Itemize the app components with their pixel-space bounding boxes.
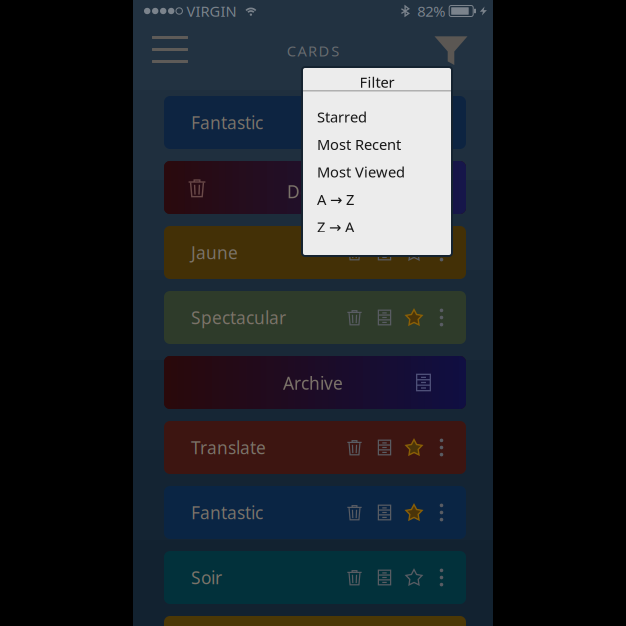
button[interactable]: Starred: [302, 103, 452, 130]
staticText: Jaune: [191, 241, 238, 264]
staticText: Soir: [191, 566, 222, 589]
staticText: Fantastic: [191, 111, 263, 134]
button[interactable]: Most Recent: [302, 130, 452, 158]
button[interactable]: Filter: [427, 30, 475, 69]
button[interactable]: Spectacular: [164, 291, 466, 344]
staticText: A → Z: [317, 189, 354, 209]
button[interactable]: Soir: [164, 551, 466, 604]
staticText: Most Recent: [317, 134, 401, 154]
button[interactable]: Archive: [164, 356, 466, 409]
button[interactable]: Z → A: [302, 213, 452, 240]
button[interactable]: Delete: [164, 161, 466, 214]
staticText: CARDS: [287, 41, 339, 60]
staticText: Filter: [359, 72, 394, 92]
staticText: Delete: [287, 180, 340, 203]
staticText: Translate: [191, 436, 266, 459]
button[interactable]: Most Viewed: [302, 158, 452, 185]
button[interactable]: Doré: [164, 616, 466, 626]
staticText: Z → A: [317, 217, 354, 236]
staticText: Archive: [283, 371, 343, 394]
button[interactable]: Fantastic: [164, 486, 466, 539]
staticText: Spectacular: [191, 306, 286, 329]
staticText: Most Viewed: [317, 162, 405, 181]
button[interactable]: Jaune: [164, 226, 466, 279]
button[interactable]: Translate: [164, 421, 466, 474]
staticText: Starred: [317, 107, 367, 126]
staticText: 82%: [417, 1, 445, 21]
staticText: Fantastic: [191, 501, 263, 524]
button[interactable]: Menu: [133, 30, 208, 69]
button[interactable]: A → Z: [302, 185, 452, 213]
button[interactable]: Fantastic: [164, 96, 466, 149]
staticText: VIRGIN: [186, 1, 236, 21]
